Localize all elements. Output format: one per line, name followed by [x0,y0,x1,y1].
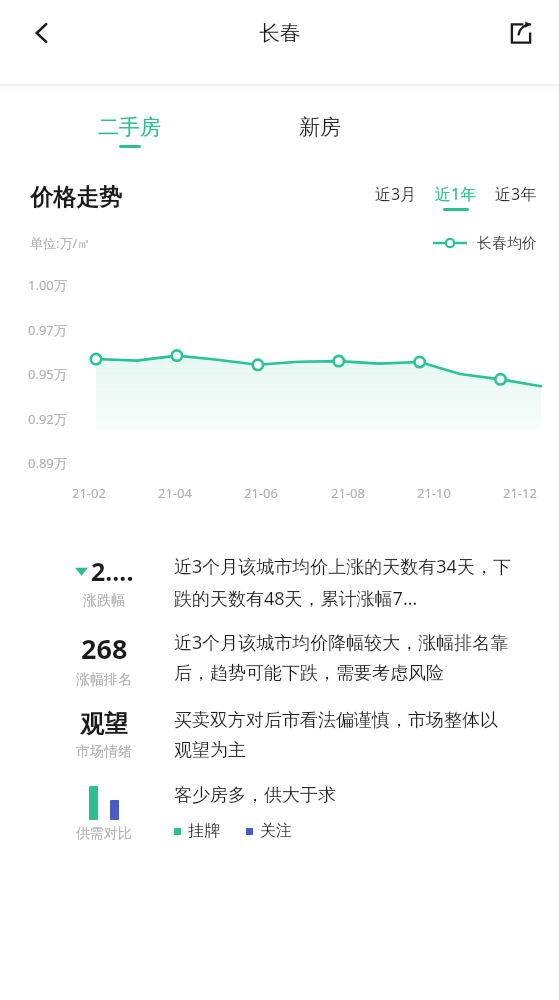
staticText: 客少房多，供大于求 [174,784,336,807]
staticText: 挂牌 [188,821,220,841]
staticText: 二手房 [98,114,161,140]
staticText: 涨跌幅 [83,592,125,610]
staticText: 268 [81,630,128,667]
button[interactable]: Share [495,7,547,59]
staticText: 21-06 [244,484,298,502]
button[interactable]: 观望 [30,709,529,762]
staticText: 0.97万 [28,321,67,339]
staticText: 0.92万 [28,410,67,428]
staticText: 新房 [299,114,341,140]
staticText: 2.... [91,554,134,588]
staticText: 0.95万 [28,365,67,383]
button[interactable]: 268 [30,630,529,689]
staticText: 21-04 [158,484,212,502]
button[interactable]: 2.... [30,554,529,610]
staticText: 近3年 [495,183,537,205]
staticText: 价格走势 [30,183,122,212]
staticText: 21-10 [417,484,471,502]
staticText: 近3个月该城市均价上涨的天数有34天，下跌的天数有48天，累计涨幅7… [174,554,513,610]
staticText: 观望 [80,709,128,739]
button[interactable]: Back [14,5,70,61]
staticText: 长春均价 [477,234,537,253]
staticText: 近1年 [435,183,477,205]
button[interactable]: 近3月 [375,183,417,211]
button[interactable]: 近3年 [495,183,537,211]
staticText: 单位:万/㎡ [30,234,91,252]
staticText: 买卖双方对后市看法偏谨慎，市场整体以观望为主 [174,709,513,762]
staticText: 涨幅排名 [76,671,132,689]
staticText: 21-08 [331,484,385,502]
staticText: 0.89万 [28,454,67,472]
staticText: 近3个月该城市均价降幅较大，涨幅排名靠后，趋势可能下跌，需要考虑风险 [174,630,513,685]
button[interactable]: 新房 [285,108,355,154]
staticText: 关注 [260,821,292,841]
button[interactable]: 近1年 [435,183,477,211]
staticText: 21-02 [72,484,126,502]
staticText: 市场情绪 [76,743,132,761]
staticText: 近3月 [375,183,417,205]
staticText: 1.00万 [28,276,67,294]
button[interactable]: 二手房 [84,108,175,154]
staticText: 21-12 [503,484,557,502]
button[interactable]: 供需对比 [30,784,529,843]
staticText: 供需对比 [76,825,132,843]
staticText: 长春 [259,20,301,46]
